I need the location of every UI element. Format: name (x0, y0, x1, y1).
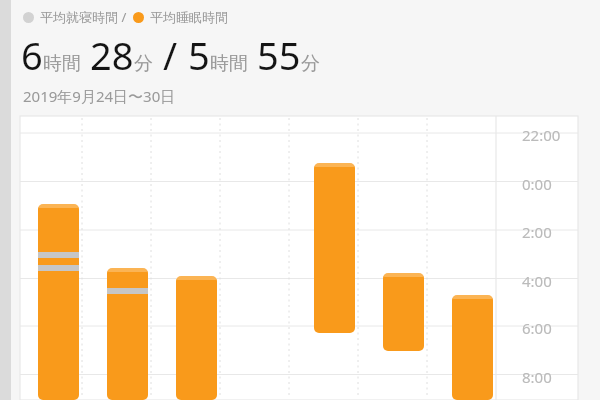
other: 平均睡眠時間 (133, 12, 144, 23)
staticText: 時間 (210, 52, 248, 76)
staticText: / (163, 29, 178, 81)
staticText: 2:00 (522, 222, 552, 242)
button[interactable]: 平均就寝時間 (23, 8, 228, 26)
staticText: 0:00 (522, 174, 552, 194)
staticText: 6:00 (522, 318, 552, 338)
staticText: 8:00 (522, 367, 552, 387)
staticText: 55 (257, 29, 301, 81)
staticText: 28 (90, 29, 134, 81)
staticText: 4:00 (522, 271, 552, 291)
staticText: 平均睡眠時間 (150, 9, 228, 25)
staticText: 分 (301, 52, 320, 76)
staticText: 5 (188, 29, 210, 81)
staticText: 22:00 (522, 125, 561, 145)
staticText: 分 (134, 52, 153, 76)
staticText: 2019年9月24日〜30日 (23, 86, 176, 106)
other: 平均就寝時間 (23, 12, 34, 23)
button[interactable]: 22:00 (0, 114, 600, 400)
staticText: 平均就寝時間 / (40, 8, 127, 26)
staticText: 6 (21, 29, 43, 81)
staticText: 時間 (43, 52, 81, 76)
